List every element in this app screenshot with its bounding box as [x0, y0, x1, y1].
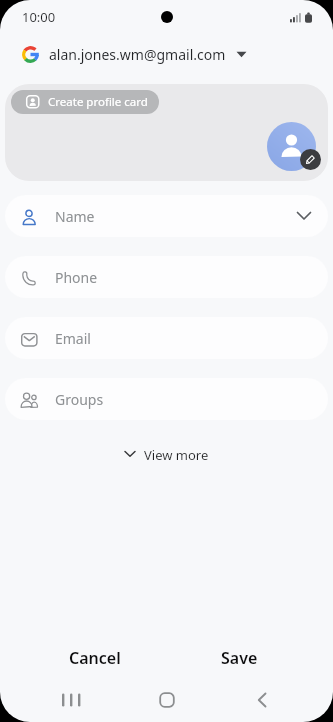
staticText: Phone [55, 268, 98, 287]
button[interactable]: alan.jones.wm@gmail.com [0, 34, 333, 74]
button[interactable]: Phone [5, 256, 328, 298]
button[interactable] [238, 678, 286, 722]
button[interactable]: Create profile card [11, 90, 159, 114]
button[interactable]: View more [124, 446, 209, 462]
button[interactable]: Groups [5, 378, 328, 420]
button[interactable] [267, 122, 316, 171]
staticText: Create profile card [48, 94, 148, 110]
button[interactable]: Cancel [23, 638, 167, 678]
staticText: Save [221, 647, 258, 669]
staticText: Email [55, 329, 91, 348]
staticText: alan.jones.wm@gmail.com [49, 45, 226, 64]
button[interactable]: Email [5, 317, 328, 359]
staticText: View more [144, 446, 209, 462]
button[interactable]: Save [167, 638, 311, 678]
staticText: Cancel [69, 647, 121, 669]
staticText: Groups [55, 390, 104, 409]
button[interactable] [143, 678, 191, 722]
button[interactable] [300, 149, 321, 170]
staticText: 10:00 [22, 8, 56, 26]
button[interactable] [47, 678, 95, 722]
staticText: Name [55, 207, 95, 226]
button[interactable]: Name [5, 195, 328, 237]
